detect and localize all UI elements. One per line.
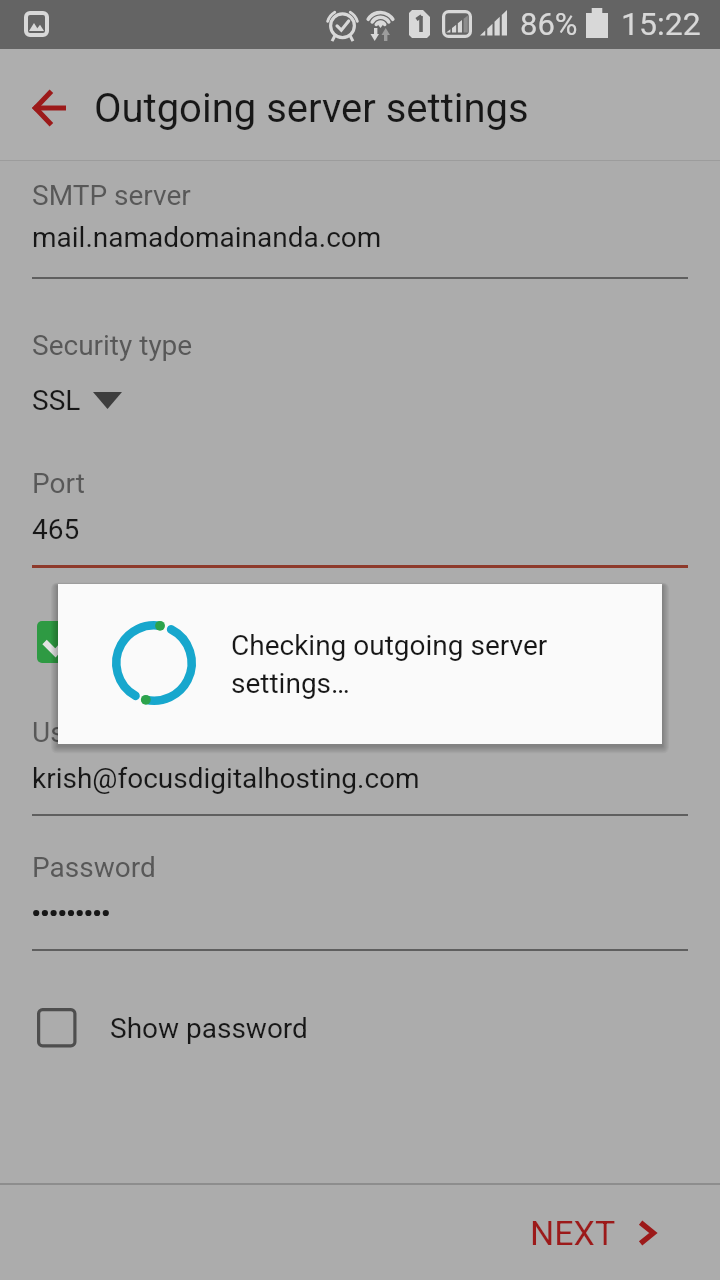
staticText: 465	[32, 513, 80, 546]
staticText: SMTP server	[32, 179, 191, 212]
staticText: Port	[32, 467, 85, 500]
button[interactable]: Navigate up	[13, 78, 85, 138]
button[interactable]: Show password	[0, 997, 720, 1059]
button[interactable]: NEXT	[530, 1185, 720, 1280]
staticText: 15:22	[621, 5, 701, 43]
staticText: Security type	[32, 329, 193, 362]
staticText: mail.namadomainanda.com	[32, 221, 382, 254]
staticText: Username	[32, 716, 160, 749]
staticText: Show password	[110, 1012, 308, 1045]
staticText: krish@focusdigitalhosting.com	[32, 762, 420, 795]
staticText: SSL	[32, 384, 81, 417]
staticText: 86%	[520, 6, 578, 42]
staticText: NEXT	[530, 1213, 616, 1253]
staticText: Password	[32, 851, 156, 884]
staticText: Checking outgoing server settings…	[231, 629, 556, 700]
staticText: Outgoing server settings	[94, 85, 529, 132]
